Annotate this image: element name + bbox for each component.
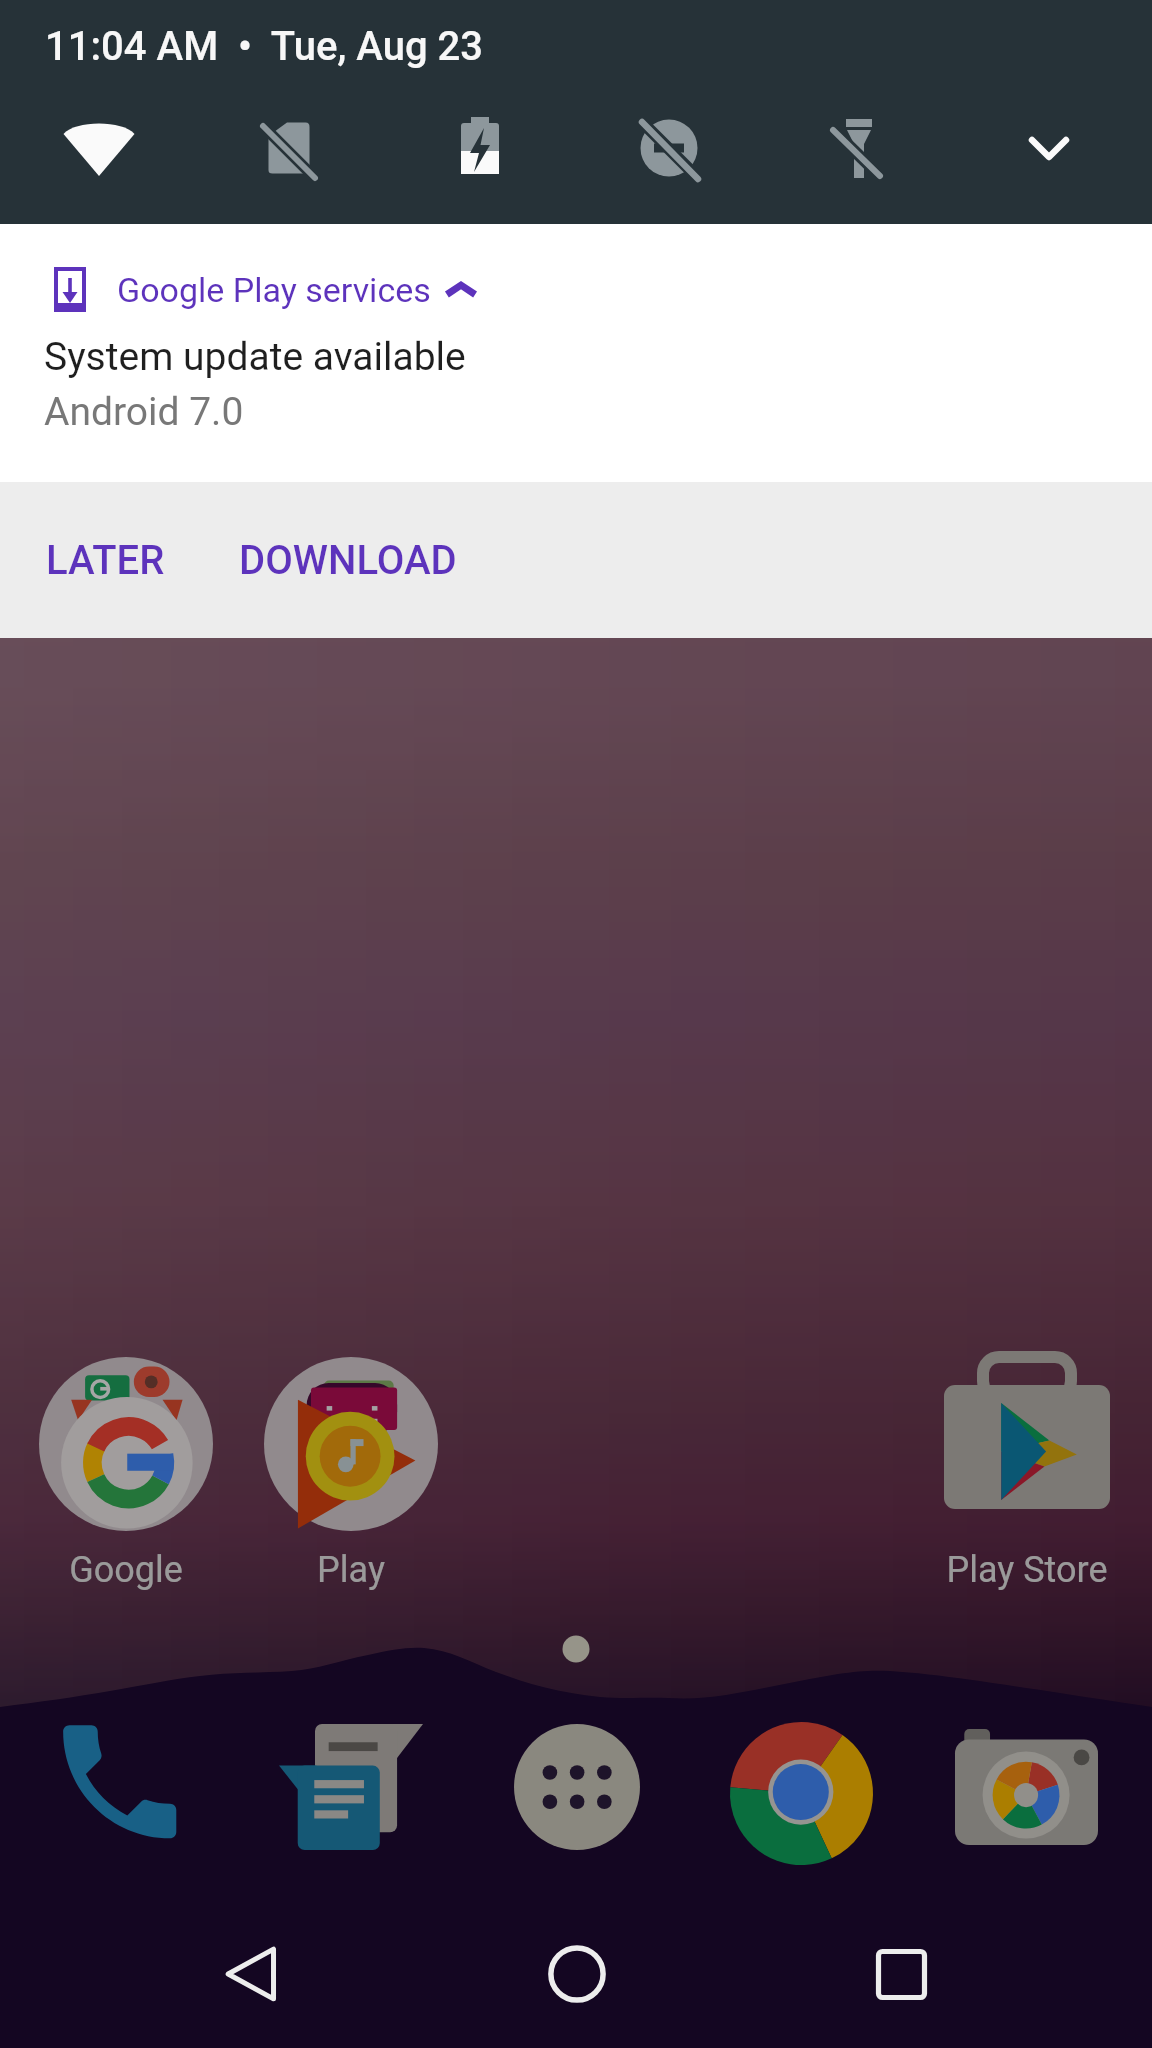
button[interactable]: LATER bbox=[0, 505, 209, 616]
staticText: LATER bbox=[46, 537, 165, 584]
button[interactable]: Recents bbox=[841, 1914, 961, 2034]
button[interactable]: Google bbox=[13, 1356, 238, 1591]
button[interactable]: Play bbox=[238, 1356, 463, 1591]
button[interactable]: Flashlight off bbox=[819, 108, 899, 188]
button[interactable]: Wi-Fi bbox=[59, 108, 139, 188]
staticText: Android 7.0 bbox=[44, 389, 244, 435]
button[interactable]: Messages bbox=[238, 1722, 463, 1852]
button[interactable]: Home bbox=[517, 1914, 637, 2034]
button[interactable]: Chrome bbox=[689, 1722, 914, 1852]
button[interactable]: Camera bbox=[914, 1722, 1139, 1852]
button[interactable]: Battery charging bbox=[440, 108, 520, 188]
button[interactable] bbox=[689, 1356, 914, 1532]
staticText: 11:04 AM • Tue, Aug 23 bbox=[45, 23, 484, 70]
button[interactable]: Do not disturb bbox=[629, 108, 709, 188]
staticText: System update available bbox=[44, 334, 466, 380]
button[interactable]: All apps bbox=[464, 1722, 689, 1852]
button[interactable]: DOWNLOAD bbox=[209, 505, 497, 616]
staticText: Google Play services bbox=[117, 270, 431, 310]
button[interactable]: Expand quick settings bbox=[1009, 108, 1089, 188]
staticText: Play bbox=[317, 1549, 385, 1591]
button[interactable]: Phone bbox=[13, 1722, 238, 1852]
button[interactable]: Back bbox=[193, 1914, 313, 2034]
staticText: Play Store bbox=[946, 1549, 1108, 1591]
button[interactable]: Play Store bbox=[914, 1356, 1139, 1591]
staticText: DOWNLOAD bbox=[239, 537, 457, 584]
button[interactable] bbox=[464, 1356, 689, 1532]
button[interactable]: Mobile data off bbox=[249, 108, 329, 188]
staticText: Google bbox=[69, 1549, 183, 1591]
